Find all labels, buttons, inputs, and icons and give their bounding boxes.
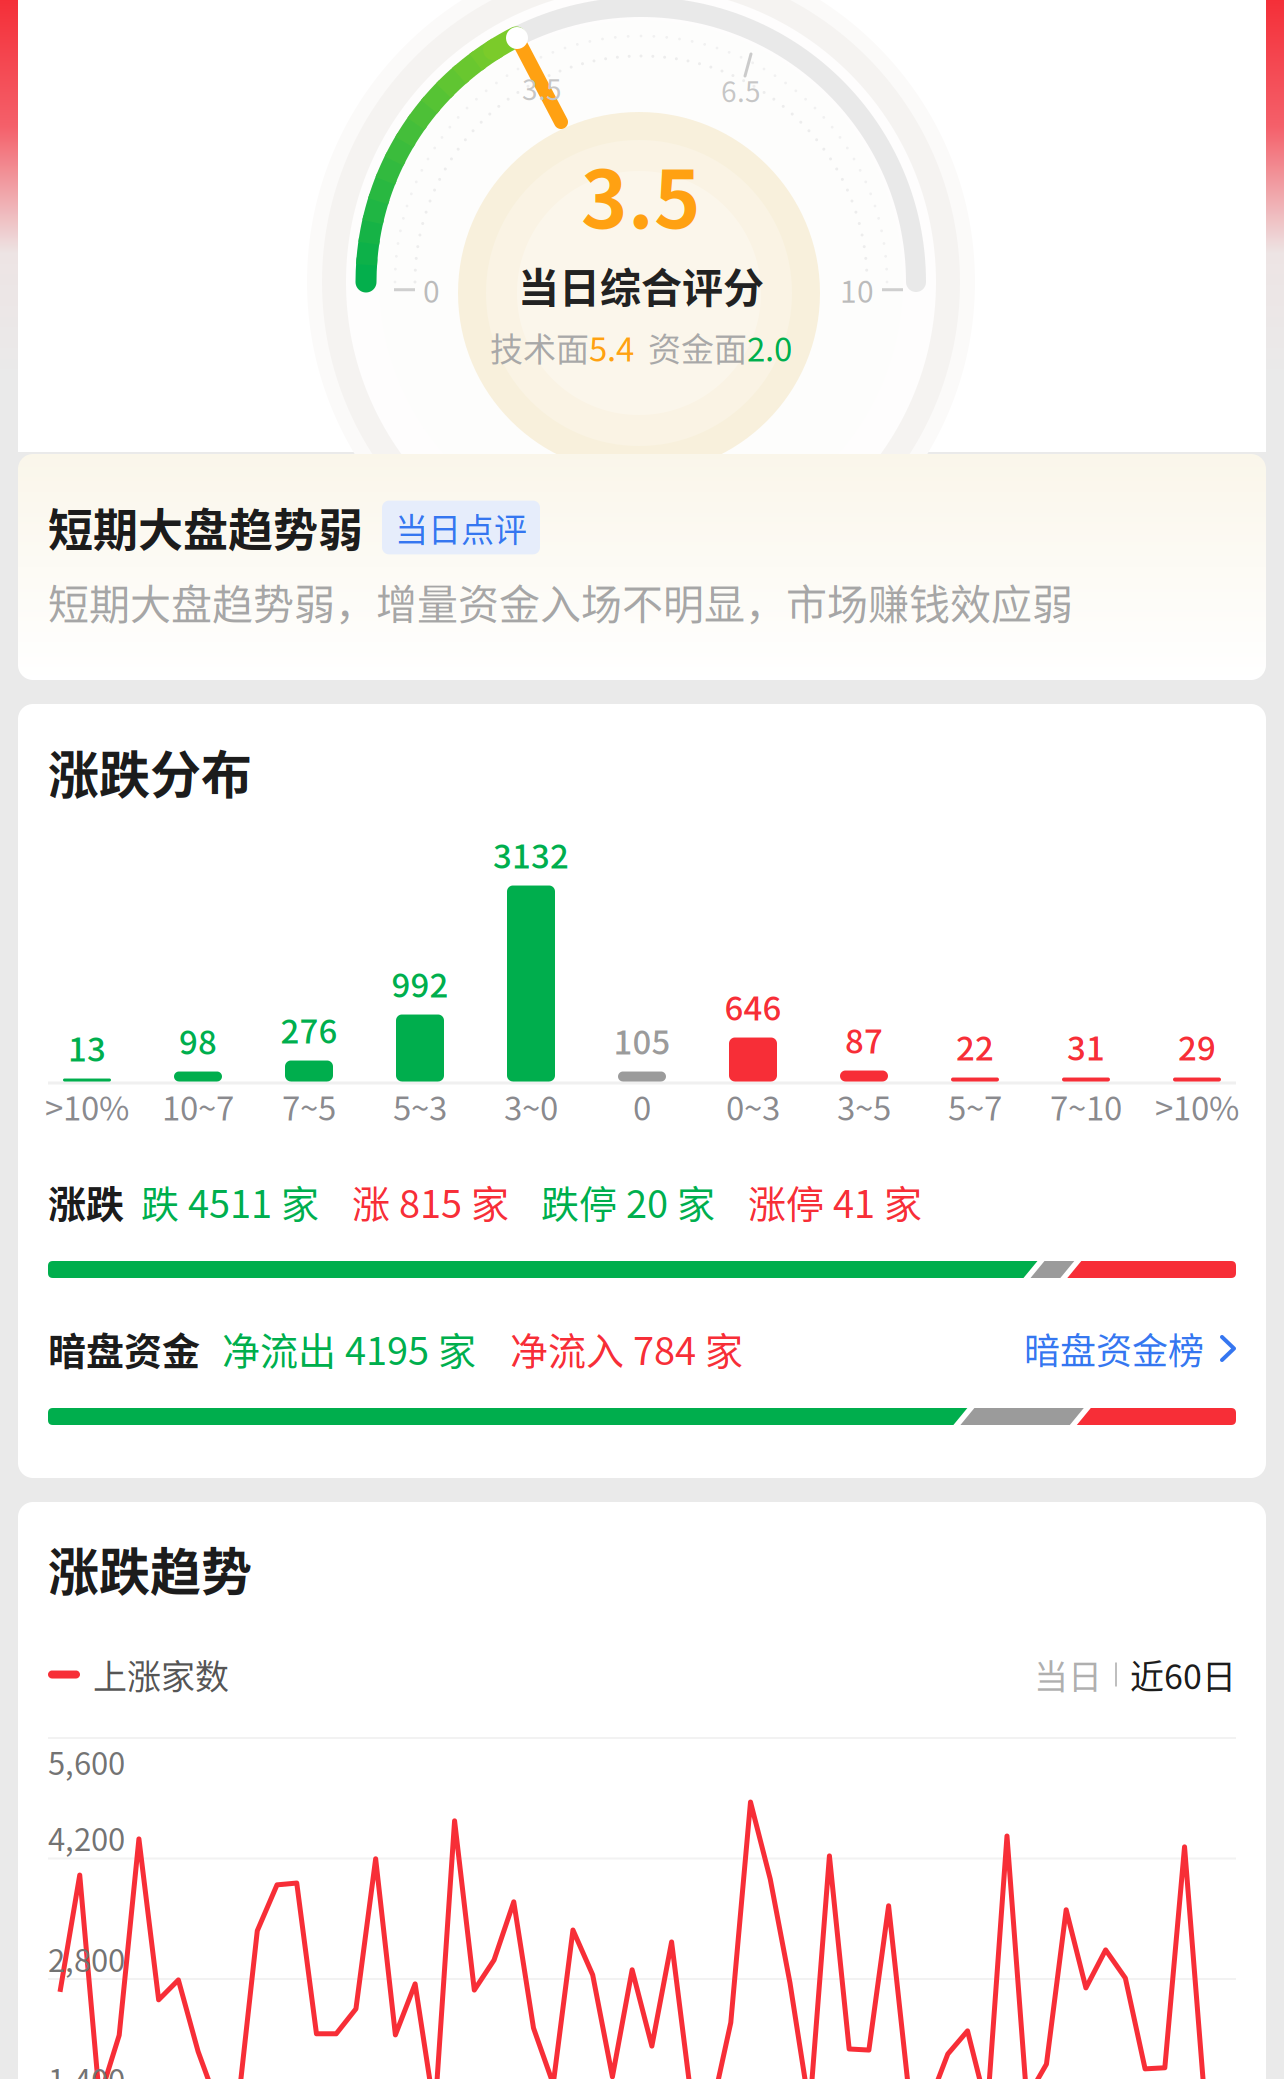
staticText: 技术面 [490,323,589,371]
staticText: 10~7 [162,1082,234,1130]
staticText: 87 [845,1015,883,1063]
staticText: 当日点评 [395,504,527,551]
staticText: 涨跌趋势 [48,1532,252,1605]
staticText: 近60日 [1130,1650,1236,1699]
button[interactable]: 近60日 [1130,1650,1236,1699]
staticText: 3132 [493,830,569,878]
staticText: 0 [633,1082,651,1130]
staticText: 涨跌 [48,1174,124,1229]
staticText: >10% [1155,1082,1239,1130]
staticText: >10% [45,1082,129,1130]
staticText: 净流入 784 家 [510,1321,743,1376]
staticText: 646 [724,982,781,1030]
staticText: 2,800 [48,1936,125,1981]
staticText: 276 [280,1005,337,1053]
staticText: 6.5 [721,70,761,110]
staticText: 上涨家数 [93,1650,229,1699]
staticText: 7~5 [282,1082,336,1130]
button[interactable]: 暗盘资金榜 [1024,1321,1236,1376]
staticText: 跌停 20 家 [541,1174,715,1229]
staticText: 资金面 [648,323,747,371]
staticText: 98 [179,1016,217,1064]
staticText: 992 [391,959,448,1007]
staticText: 7~10 [1050,1082,1122,1130]
staticText: 3.5 [581,137,701,251]
staticText: 0~3 [726,1082,780,1130]
staticText: 0 [423,268,440,311]
staticText: 3~5 [837,1082,891,1130]
staticText: 5.4 [589,323,634,371]
staticText: 净流出 4195 家 [222,1321,476,1376]
staticText: 当日 [1034,1650,1102,1699]
staticText: 13 [68,1023,106,1071]
staticText: 涨 815 家 [352,1174,509,1229]
staticText: 3~0 [504,1082,558,1130]
staticText: 105 [613,1016,670,1064]
staticText: 5~3 [393,1082,447,1130]
button[interactable]: 当日 [1034,1650,1102,1699]
staticText: 4,200 [48,1815,125,1860]
staticText: 短期大盘趋势弱 [48,495,363,560]
staticText: 31 [1067,1022,1105,1070]
staticText: 暗盘资金 [48,1321,200,1376]
staticText: 跌 4511 家 [141,1174,319,1229]
staticText: 当日综合评分 [518,255,764,315]
staticText: 10 [840,268,874,311]
staticText: 29 [1178,1022,1216,1070]
staticText: 2.0 [747,323,792,371]
staticText: 3.5 [522,68,562,108]
staticText: 涨停 41 家 [748,1174,922,1229]
staticText: 暗盘资金榜 [1024,1322,1204,1374]
staticText: 1,400 [48,2056,125,2079]
staticText: 涨跌分布 [48,735,252,808]
staticText: 5,600 [48,1739,125,1784]
staticText: 22 [956,1022,994,1070]
staticText: 5~7 [948,1082,1002,1130]
staticText: 短期大盘趋势弱，增量资金入场不明显，市场赚钱效应弱 [48,572,1073,631]
